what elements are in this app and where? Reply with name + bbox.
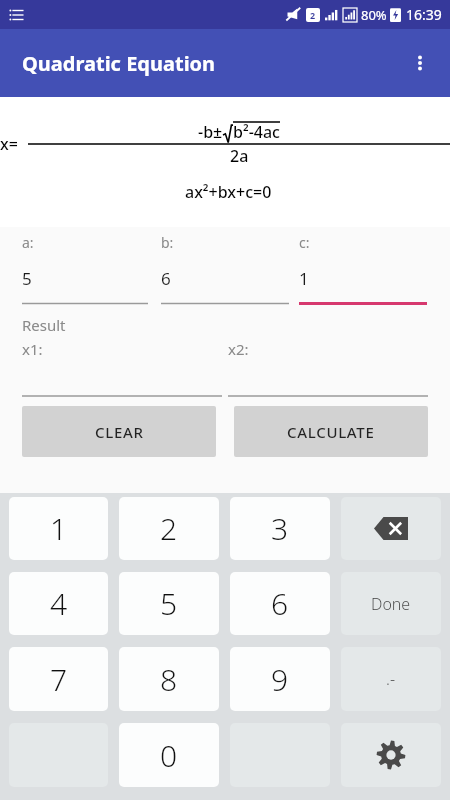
button[interactable] bbox=[22, 305, 222, 397]
staticText: ax²+bx+c=0 bbox=[185, 181, 272, 203]
staticText: c: bbox=[299, 233, 310, 252]
button[interactable]: 3 bbox=[230, 497, 330, 560]
staticText: 3 bbox=[271, 508, 289, 549]
button[interactable]: CLEAR bbox=[22, 406, 216, 457]
staticText: x1: bbox=[22, 339, 43, 359]
staticText: CALCULATE bbox=[287, 422, 375, 442]
staticText: 6 bbox=[271, 583, 289, 624]
staticText: 2 bbox=[310, 9, 316, 21]
button[interactable]: Keyboard settings bbox=[341, 723, 441, 787]
staticText: 1 bbox=[299, 267, 309, 290]
staticText: Done bbox=[371, 593, 411, 615]
button[interactable]: a: bbox=[22, 227, 148, 305]
staticText: 2 bbox=[160, 508, 178, 549]
button[interactable]: 8 bbox=[119, 647, 219, 711]
staticText: a: bbox=[22, 233, 34, 252]
button[interactable]: 0 bbox=[119, 723, 219, 787]
staticText: 16:39 bbox=[406, 5, 442, 24]
button[interactable]: .- bbox=[341, 647, 441, 711]
button[interactable]: CALCULATE bbox=[234, 406, 428, 457]
staticText: 2a bbox=[230, 145, 249, 167]
button[interactable]: 4 bbox=[9, 572, 108, 635]
button[interactable]: 6 bbox=[230, 572, 330, 635]
staticText: b: bbox=[161, 233, 174, 252]
button[interactable]: 5 bbox=[119, 572, 219, 635]
staticText: 80% bbox=[361, 6, 387, 24]
button[interactable]: 2 bbox=[119, 497, 219, 560]
button[interactable]: Backspace bbox=[341, 497, 441, 560]
staticText: 6 bbox=[161, 267, 171, 290]
staticText: 9 bbox=[271, 659, 289, 700]
button[interactable]: c: bbox=[299, 227, 427, 305]
staticText: 8 bbox=[160, 659, 178, 700]
staticText: b²-4ac bbox=[233, 121, 280, 143]
staticText: Quadratic Equation bbox=[22, 50, 216, 77]
staticText: .- bbox=[386, 668, 396, 690]
staticText: Result bbox=[22, 315, 66, 335]
button[interactable]: b: bbox=[161, 227, 289, 305]
staticText: CLEAR bbox=[95, 422, 144, 442]
staticText: 7 bbox=[50, 659, 68, 700]
button[interactable]: More options bbox=[400, 43, 440, 83]
staticText: -b± bbox=[198, 121, 223, 143]
staticText: 1 bbox=[50, 508, 68, 549]
button[interactable]: 7 bbox=[9, 647, 108, 711]
staticText: 4 bbox=[50, 583, 68, 624]
button[interactable]: Done bbox=[341, 572, 441, 635]
staticText: x2: bbox=[228, 339, 249, 359]
staticText: 0 bbox=[160, 735, 178, 776]
button[interactable] bbox=[228, 305, 428, 397]
button[interactable]: 9 bbox=[230, 647, 330, 711]
button[interactable]: 1 bbox=[9, 497, 108, 560]
staticText: 5 bbox=[22, 267, 32, 290]
staticText: 5 bbox=[160, 583, 178, 624]
staticText: x= bbox=[0, 133, 18, 155]
